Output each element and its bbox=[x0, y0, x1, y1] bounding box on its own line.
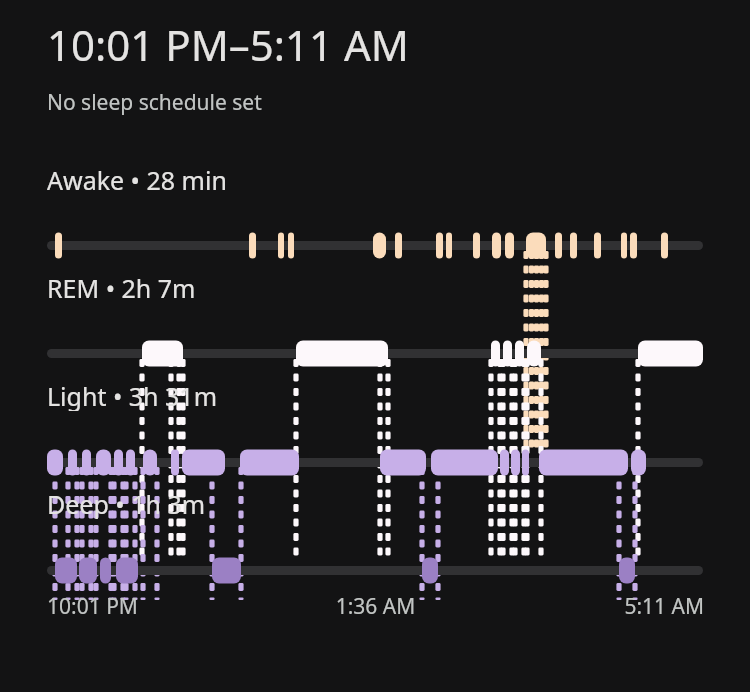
staticText: 5:11 AM bbox=[485, 592, 704, 621]
staticText: REM • 2h 7m bbox=[47, 271, 196, 303]
button[interactable]: Awake • 28 min bbox=[0, 163, 750, 195]
staticText: 1:36 AM bbox=[266, 592, 485, 621]
staticText: No sleep schedule set bbox=[47, 88, 262, 117]
other: Sleep stage hypnogram bbox=[0, 0, 750, 692]
button[interactable]: Deep • 1h 3m bbox=[0, 487, 750, 519]
button[interactable]: REM • 2h 7m bbox=[0, 271, 750, 303]
button[interactable]: Light • 3h 31m bbox=[0, 379, 750, 411]
staticText: Light • 3h 31m bbox=[47, 379, 218, 411]
staticText: Deep • 1h 3m bbox=[47, 487, 206, 519]
staticText: 10:01 PM–5:11 AM bbox=[47, 16, 409, 73]
staticText: Awake • 28 min bbox=[47, 163, 227, 195]
staticText: 10:01 PM bbox=[47, 592, 266, 621]
